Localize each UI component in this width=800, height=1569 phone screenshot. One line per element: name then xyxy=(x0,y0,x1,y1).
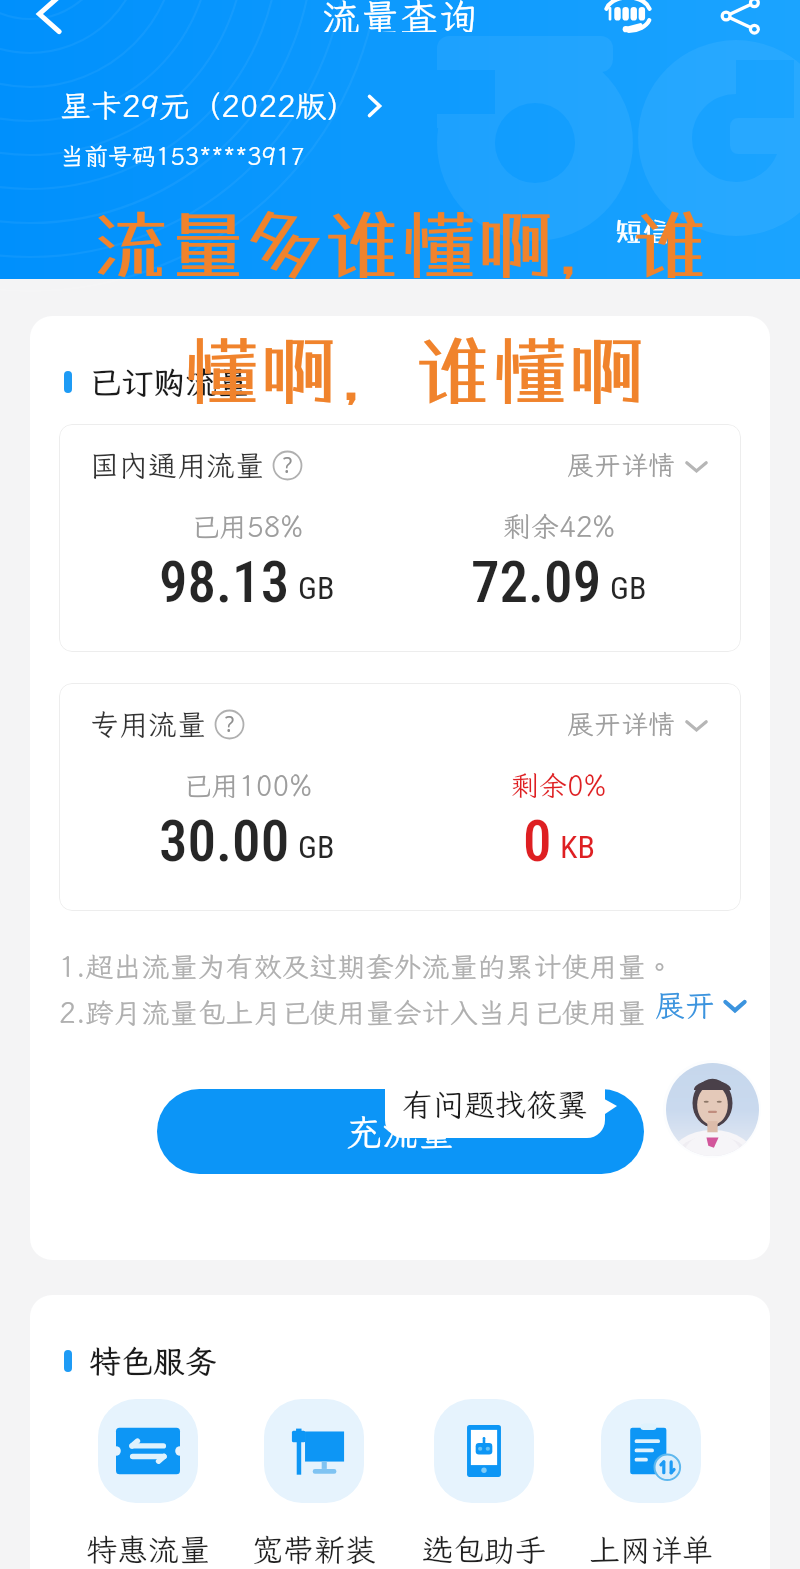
staticText: 98.13 xyxy=(159,549,290,616)
staticText: 充流量 xyxy=(346,1108,455,1155)
staticText: 星卡29元（2022版） xyxy=(60,85,358,126)
button[interactable]: Back xyxy=(23,0,75,34)
staticText: 展开详情 xyxy=(567,447,675,483)
staticText: 已订购流量 xyxy=(89,361,250,403)
button[interactable]: 星卡29元（2022版） xyxy=(60,85,388,126)
button[interactable]: Share xyxy=(712,0,768,36)
staticText: 懂啊，谁懂啊 xyxy=(184,325,646,415)
button[interactable]: Help xyxy=(272,450,303,481)
staticText: 有问题找筱翼 xyxy=(402,1084,588,1125)
staticText: 选包助手 xyxy=(422,1529,546,1569)
button[interactable]: 上网详单 xyxy=(569,1399,733,1569)
staticText: 72.09 xyxy=(471,549,602,616)
button[interactable]: Help xyxy=(214,709,245,740)
staticText: 国内通用流量 xyxy=(90,446,265,484)
staticText: GB xyxy=(298,569,335,607)
staticText: GB xyxy=(610,569,647,607)
button[interactable]: 选包助手 xyxy=(402,1399,566,1569)
staticText: 流量查询 xyxy=(322,0,479,32)
staticText: 流量多谁懂啊，谁 xyxy=(93,199,709,289)
button[interactable]: 有问题找筱翼 xyxy=(385,1070,605,1138)
button[interactable]: 特惠流量 xyxy=(66,1399,230,1569)
staticText: 展开详情 xyxy=(567,706,675,742)
staticText: 短信 xyxy=(615,215,669,247)
button[interactable]: 充流量 xyxy=(157,1089,644,1174)
staticText: 1.超出流量为有效及过期套外流量的累计使用量。 xyxy=(59,948,674,985)
staticText: 2.跨月流量包上月已使用量会计入当月已使用量 xyxy=(59,994,646,1031)
staticText: 宽带新装 xyxy=(252,1529,376,1569)
staticText: 专用流量 xyxy=(90,705,207,743)
button[interactable]: 宽带新装 xyxy=(232,1399,396,1569)
staticText: 展开 xyxy=(655,985,715,1025)
staticText: 特惠流量 xyxy=(86,1529,210,1569)
button[interactable]: Customer assistant xyxy=(663,1060,761,1158)
button[interactable]: 展开详情 xyxy=(567,706,710,742)
staticText: 上网详单 xyxy=(589,1529,713,1569)
staticText: ? xyxy=(225,710,235,739)
staticText: 已用58% xyxy=(191,508,304,545)
staticText: 已用100% xyxy=(183,767,312,804)
staticText: 0 xyxy=(523,808,552,875)
staticText: 剩余42% xyxy=(503,508,616,545)
button[interactable]: 展开详情 xyxy=(567,447,710,483)
staticText: KB xyxy=(560,828,595,866)
staticText: 剩余0% xyxy=(511,767,607,804)
staticText: 特色服务 xyxy=(89,1340,218,1382)
staticText: 30.00 xyxy=(159,808,290,875)
staticText: GB xyxy=(298,828,335,866)
staticText: 当前号码153****3917 xyxy=(60,140,305,172)
staticText: ? xyxy=(283,451,293,480)
button[interactable]: 展开 xyxy=(655,985,750,1025)
button[interactable]: 10000 customer service xyxy=(598,0,658,35)
